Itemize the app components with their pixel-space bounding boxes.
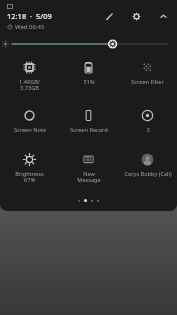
- button[interactable]: Corys Bobby (Call): [118, 148, 177, 192]
- button[interactable]: Brightness 67%: [0, 148, 59, 192]
- staticText: 51%: [83, 78, 95, 86]
- button[interactable]: Edit: [101, 8, 117, 24]
- button[interactable]: 1.49GB/ 3.73GB: [0, 56, 59, 104]
- staticText: Screen Record: [70, 126, 108, 134]
- button[interactable]: Screen Filter: [118, 56, 177, 104]
- button[interactable]: Settings: [128, 8, 144, 24]
- staticText: Screen Filter: [131, 78, 164, 86]
- staticText: Wed 06:45: [15, 23, 45, 31]
- button[interactable]: Brightness slider: [0, 36, 177, 52]
- button[interactable]: New Message: [59, 148, 118, 192]
- staticText: Screen Note: [14, 126, 46, 134]
- staticText: 12:18 · 5/09: [7, 11, 52, 21]
- button[interactable]: Screen Record: [59, 104, 118, 148]
- button[interactable]: 3: [118, 104, 177, 148]
- staticText: Brightness 67%: [15, 170, 44, 184]
- staticText: New Message: [77, 170, 101, 184]
- staticText: 1.49GB/ 3.73GB: [19, 78, 40, 92]
- staticText: Corys Bobby (Call): [124, 170, 172, 178]
- button[interactable]: 51%: [59, 56, 118, 104]
- button[interactable]: Collapse: [155, 8, 171, 24]
- staticText: 3: [146, 126, 150, 134]
- button[interactable]: Screen Note: [0, 104, 59, 148]
